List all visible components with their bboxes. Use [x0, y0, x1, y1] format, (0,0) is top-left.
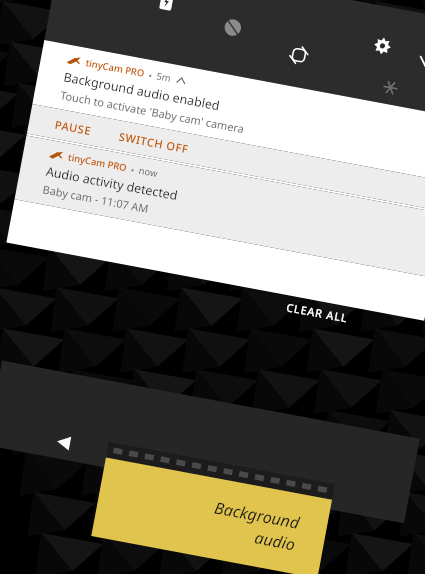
staticText: CLEAR ALL [285, 299, 350, 326]
button[interactable]: Auto rotate [279, 35, 319, 75]
staticText: SWITCH OFF [118, 129, 190, 156]
staticText: • [148, 69, 154, 81]
button[interactable]: Battery saver [147, 0, 186, 21]
button[interactable]: Settings [362, 25, 402, 65]
button[interactable]: Back [48, 427, 78, 457]
staticText: tinyCam PRO [67, 151, 128, 174]
staticText: 5m [155, 69, 173, 85]
button[interactable]: Vibrate [375, 72, 406, 103]
staticText: Background audio enabled [62, 68, 222, 114]
button[interactable]: Expand [408, 44, 425, 79]
staticText: Background [213, 496, 301, 534]
button[interactable]: SWITCH OFF [102, 118, 205, 166]
button[interactable]: Background [91, 457, 332, 574]
button[interactable]: Do not disturb [213, 8, 253, 47]
button[interactable]: tinyCam PRO [14, 135, 425, 277]
staticText: now [138, 164, 159, 180]
staticText: audio [253, 526, 297, 555]
button[interactable]: tinyCam PRO [32, 40, 425, 182]
staticText: Audio activity detected [45, 163, 179, 204]
staticText: • [130, 163, 136, 176]
staticText: PAUSE [54, 117, 93, 138]
staticText: Baby cam - 11:07 AM [41, 181, 150, 216]
staticText: tinyCam PRO [85, 56, 146, 80]
staticText: Touch to activate 'Baby cam' camera [59, 87, 246, 136]
button[interactable]: CLEAR ALL [281, 297, 354, 328]
button[interactable]: PAUSE [27, 104, 108, 148]
